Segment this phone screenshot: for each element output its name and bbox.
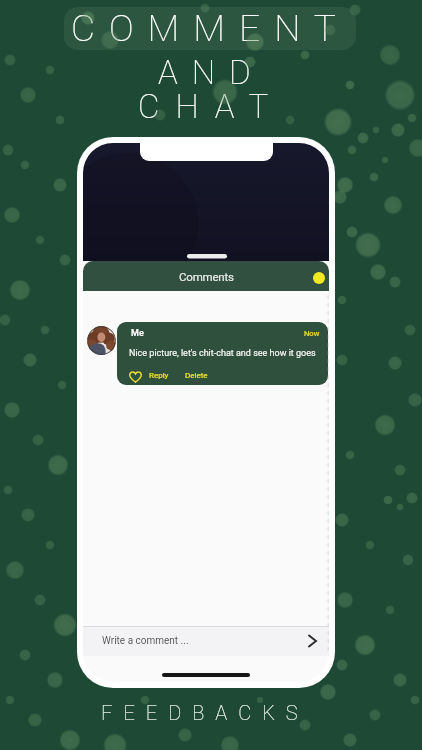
staticText: Nice picture, let's chit-chat and see ho… <box>129 348 316 359</box>
staticText: FEEDBACKS <box>101 701 309 724</box>
button[interactable]: Delete <box>185 371 208 380</box>
staticText: CHAT <box>138 87 285 126</box>
button[interactable]: Me <box>117 322 328 385</box>
staticText: AND <box>158 53 265 92</box>
button[interactable]: COMMENT <box>64 7 356 50</box>
button[interactable] <box>313 272 325 284</box>
button[interactable]: Write a comment ... <box>83 626 329 656</box>
button[interactable]: Reply <box>149 371 169 380</box>
button[interactable] <box>129 370 142 383</box>
staticText: Now <box>304 329 320 338</box>
staticText: Comments <box>179 270 234 283</box>
staticText: Me <box>131 328 144 339</box>
staticText: COMMENT <box>71 7 350 50</box>
button[interactable] <box>87 326 116 355</box>
staticText: Write a comment ... <box>102 635 189 647</box>
